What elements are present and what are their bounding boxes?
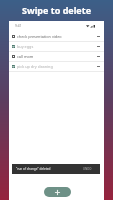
staticText: check presentation video — [17, 34, 97, 39]
button[interactable]: check presentation video — [9, 31, 104, 41]
staticText: UNDO — [83, 167, 92, 171]
button[interactable]: buy eggs — [9, 41, 104, 51]
button[interactable]: pick up dry cleaning — [9, 61, 104, 71]
button[interactable]: call mom — [9, 51, 104, 61]
staticText: 9:41 — [15, 24, 22, 28]
staticText: pick up dry cleaning — [17, 64, 97, 69]
staticText: buy eggs — [17, 44, 97, 49]
staticText: "run of change" deleted — [16, 167, 51, 171]
staticText: Swipe to delete — [22, 4, 92, 16]
button[interactable]: "run of change" deleted — [12, 164, 100, 174]
staticText: call mom — [17, 54, 97, 59]
button[interactable]: Add task — [44, 187, 71, 197]
